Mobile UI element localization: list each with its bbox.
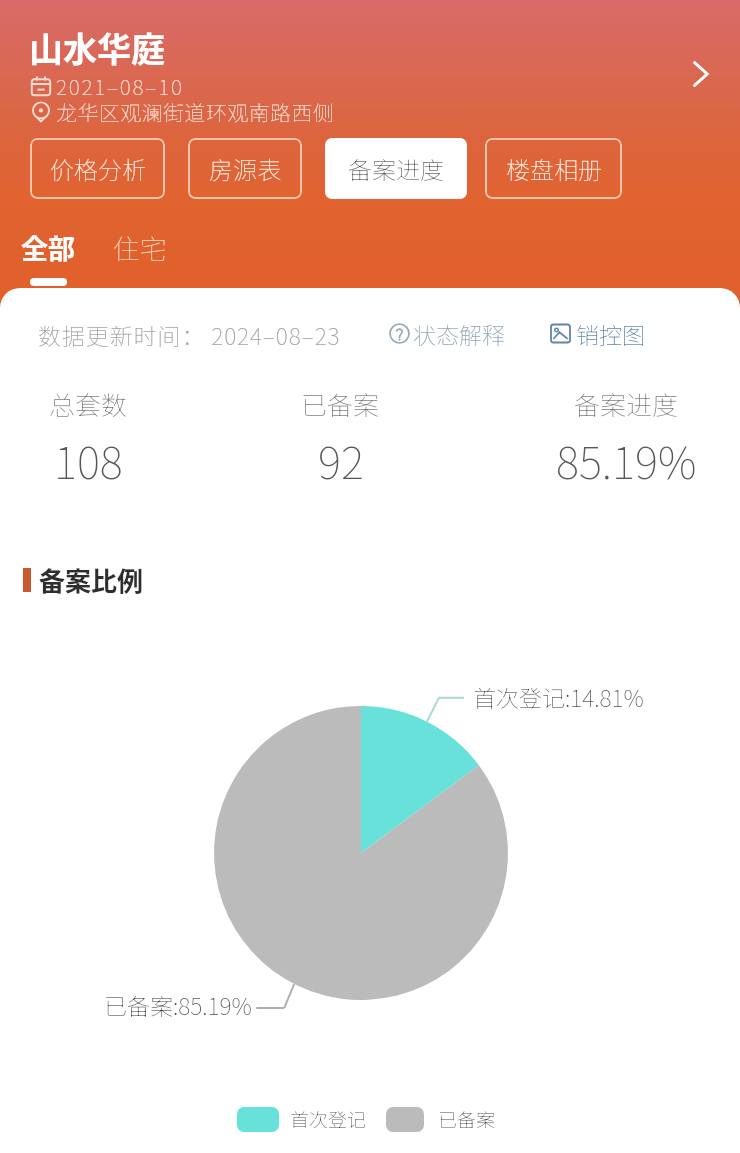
staticText: 85.19%: [556, 428, 697, 492]
button[interactable]: 已备案: [250, 385, 430, 492]
staticText: 备案进度: [348, 151, 444, 186]
staticText: 2021–08–10: [56, 71, 184, 101]
staticText: 首次登记:14.81%: [473, 680, 644, 713]
staticText: 全部: [21, 228, 75, 267]
staticText: 已备案:85.19%: [104, 988, 252, 1021]
button[interactable]: 总套数: [0, 385, 178, 492]
button[interactable]: 楼盘相册: [485, 138, 622, 199]
staticText: 108: [54, 428, 123, 492]
button[interactable]: 已备案: [386, 1105, 496, 1133]
button[interactable]: 状态解释: [389, 317, 505, 350]
button[interactable]: 备案进度: [536, 385, 716, 492]
button[interactable]: 全部: [8, 222, 88, 292]
button[interactable]: 价格分析: [30, 138, 165, 199]
staticText: 销控图: [576, 317, 645, 350]
staticText: 状态解释: [413, 317, 505, 350]
staticText: 已备案: [438, 1105, 496, 1133]
staticText: 备案比例: [39, 561, 144, 599]
staticText: 楼盘相册: [506, 151, 602, 186]
staticText: 住宅: [113, 228, 167, 267]
staticText: 山水华庭: [29, 23, 165, 72]
button[interactable]: 查看楼盘详情: [680, 54, 720, 94]
staticText: 总套数: [49, 385, 128, 423]
button[interactable]: 房源表: [188, 138, 302, 199]
button[interactable]: 首次登记: [237, 1105, 367, 1133]
staticText: 价格分析: [50, 151, 146, 186]
staticText: 龙华区观澜街道环观南路西侧: [56, 97, 335, 127]
staticText: 92: [318, 428, 364, 492]
staticText: 已备案: [301, 385, 380, 423]
staticText: 备案进度: [574, 385, 679, 423]
button[interactable]: 住宅: [100, 222, 180, 292]
staticText: 房源表: [209, 151, 281, 186]
staticText: 数据更新时间： 2024–08–23: [38, 318, 341, 351]
button[interactable]: 备案进度: [325, 138, 467, 199]
button[interactable]: 销控图: [550, 317, 645, 350]
staticText: 首次登记: [290, 1105, 367, 1133]
